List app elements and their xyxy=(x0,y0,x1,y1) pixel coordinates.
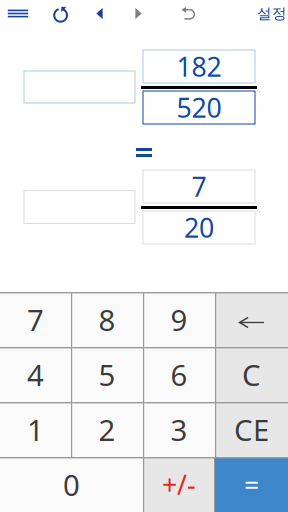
staticText: +/- xyxy=(162,467,196,502)
staticText: 3 xyxy=(170,410,187,449)
staticText: 6 xyxy=(170,355,187,394)
staticText: 7 xyxy=(27,300,44,339)
staticText: 1 xyxy=(27,410,44,449)
button[interactable]: C xyxy=(215,347,288,402)
button[interactable]: 9 xyxy=(143,292,215,347)
button[interactable]: 4 xyxy=(0,347,71,402)
staticText: 8 xyxy=(98,300,115,339)
button[interactable]: 5 xyxy=(71,347,143,402)
staticText: 520 xyxy=(176,90,221,125)
button[interactable]: Previous xyxy=(86,0,113,26)
staticText: 9 xyxy=(170,300,187,339)
button[interactable]: 6 xyxy=(143,347,215,402)
staticText: CE xyxy=(234,410,269,449)
button[interactable]: 0 xyxy=(0,457,143,512)
staticText: 7 xyxy=(191,169,206,204)
staticText: 2 xyxy=(98,410,115,449)
staticText: = xyxy=(244,467,259,502)
staticText: 5 xyxy=(98,355,115,394)
button[interactable]: Backspace xyxy=(215,292,288,347)
staticText: 182 xyxy=(176,49,221,84)
button[interactable]: 3 xyxy=(143,402,215,457)
button[interactable]: 2 xyxy=(71,402,143,457)
staticText: 20 xyxy=(184,210,214,245)
button[interactable]: +/- xyxy=(143,457,215,512)
button[interactable]: Reset xyxy=(36,0,86,26)
button[interactable]: Undo xyxy=(164,0,212,26)
button[interactable]: 설정 xyxy=(256,0,288,26)
button[interactable]: 1 xyxy=(0,402,71,457)
button[interactable]: Next xyxy=(113,0,164,26)
button[interactable]: = xyxy=(215,457,288,512)
staticText: C xyxy=(242,355,261,394)
staticText: 4 xyxy=(27,355,44,394)
button[interactable]: Menu xyxy=(0,0,36,26)
button[interactable]: CE xyxy=(215,402,288,457)
button[interactable]: 8 xyxy=(71,292,143,347)
button[interactable]: 7 xyxy=(0,292,71,347)
staticText: 설정 xyxy=(257,4,287,22)
staticText: 0 xyxy=(63,465,80,504)
